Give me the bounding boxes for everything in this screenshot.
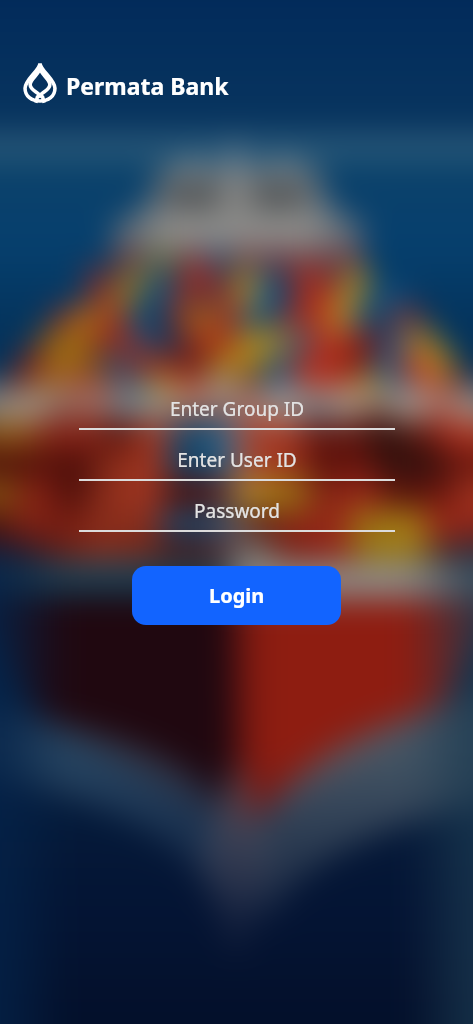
staticText: Enter Group ID xyxy=(79,396,395,422)
button[interactable]: Password xyxy=(79,498,395,532)
button[interactable]: Login xyxy=(132,566,341,625)
other: Permata Bank logo xyxy=(23,62,57,102)
button[interactable]: Enter User ID xyxy=(79,447,395,481)
staticText: Permata Bank xyxy=(66,70,229,101)
staticText: Login xyxy=(209,582,265,609)
button[interactable]: Enter Group ID xyxy=(79,396,395,430)
staticText: Enter User ID xyxy=(79,447,395,473)
staticText: Password xyxy=(79,498,395,524)
